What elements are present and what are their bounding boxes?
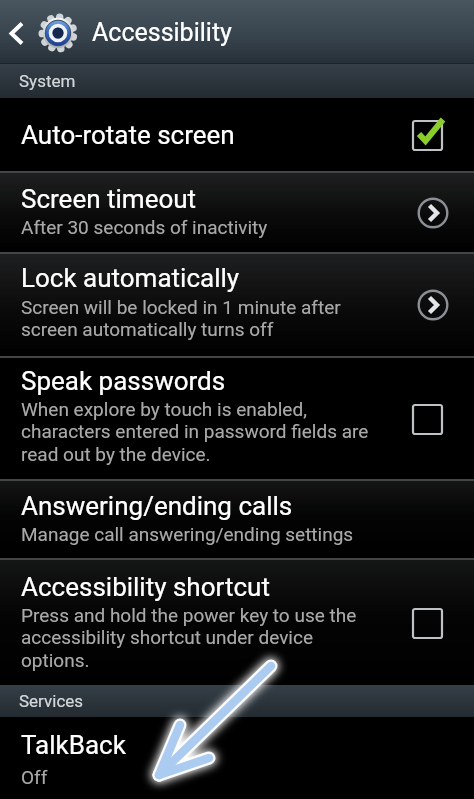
staticText: Screen will be locked in 1 minute after … xyxy=(21,296,341,341)
staticText: After 30 seconds of inactivity xyxy=(21,216,268,238)
staticText: Screen timeout xyxy=(21,184,197,214)
staticText: Off xyxy=(21,766,48,788)
staticText: Lock automatically xyxy=(21,263,240,293)
staticText: Accessibility xyxy=(92,18,232,47)
staticText: Answering/ending calls xyxy=(21,491,293,521)
button[interactable]: Auto-rotate screen xyxy=(0,98,474,171)
staticText: Accessibility shortcut xyxy=(21,572,270,602)
staticText: Manage call answering/ending settings xyxy=(21,523,354,545)
button[interactable]: Screen timeout xyxy=(0,173,474,252)
button[interactable]: Accessibility shortcut xyxy=(0,560,474,685)
staticText: System xyxy=(19,71,76,91)
button[interactable]: Lock automatically xyxy=(0,254,474,356)
staticText: Services xyxy=(19,691,84,711)
staticText: TalkBack xyxy=(21,730,126,760)
button[interactable] xyxy=(412,606,446,640)
staticText: Speak passwords xyxy=(21,366,226,396)
staticText: Auto-rotate screen xyxy=(21,120,235,150)
button[interactable]: Answering/ending calls xyxy=(0,481,474,558)
button[interactable]: TalkBack xyxy=(0,717,474,799)
staticText: Press and hold the power key to use the … xyxy=(21,604,357,672)
staticText: When explore by touch is enabled, charac… xyxy=(21,398,369,466)
button[interactable]: Speak passwords xyxy=(0,358,474,479)
button[interactable] xyxy=(412,402,446,436)
button[interactable] xyxy=(0,0,34,64)
button[interactable] xyxy=(412,118,446,152)
